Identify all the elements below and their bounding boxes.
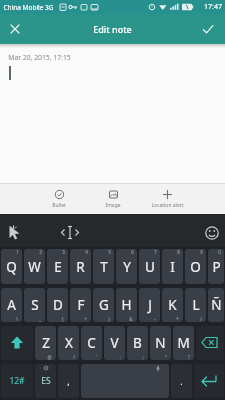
staticText: H — [121, 296, 132, 314]
staticText: @ — [47, 354, 52, 360]
button[interactable]: L — [185, 288, 206, 322]
button[interactable]: Image — [86, 184, 140, 214]
staticText: Bullet — [52, 202, 66, 209]
staticText: ; — [142, 354, 144, 360]
button[interactable]: B — [127, 326, 148, 360]
staticText: & — [129, 316, 133, 322]
staticText: . — [180, 375, 183, 387]
staticText: I — [170, 258, 175, 276]
staticText: China Mobile 3G — [3, 3, 54, 12]
staticText: U — [145, 258, 155, 276]
button[interactable]: . — [171, 364, 192, 398]
staticText: R — [76, 258, 85, 276]
button[interactable]: I — [162, 249, 183, 284]
button[interactable]: ES — [35, 364, 56, 398]
staticText: ES — [41, 375, 51, 387]
staticText: A — [7, 296, 16, 314]
staticText: O — [190, 258, 201, 276]
staticText: 3 — [62, 249, 65, 255]
staticText: N — [155, 334, 166, 352]
staticText: : — [119, 354, 121, 360]
staticText: Y — [123, 258, 131, 276]
button[interactable]: A — [1, 288, 22, 322]
staticText: , — [67, 375, 70, 387]
button[interactable]: E — [47, 249, 68, 284]
button[interactable]: J — [139, 288, 160, 322]
button[interactable]: D — [47, 288, 68, 322]
staticText: - — [154, 316, 156, 322]
staticText: 12# — [9, 375, 25, 387]
button[interactable]: H — [116, 288, 137, 322]
staticText: 0 — [218, 249, 221, 255]
button[interactable]: 12# — [1, 364, 33, 398]
button[interactable]: Z — [35, 326, 56, 360]
staticText: 8 — [177, 249, 180, 255]
button[interactable]: W — [24, 249, 45, 284]
staticText: ' — [96, 354, 98, 360]
staticText: K — [168, 296, 177, 314]
staticText: V — [110, 334, 119, 352]
button[interactable]: Ñ — [208, 288, 224, 322]
button[interactable]: , — [58, 364, 79, 398]
button[interactable]: F — [70, 288, 91, 322]
staticText: / — [73, 354, 75, 360]
staticText: 6 — [131, 249, 134, 255]
button[interactable]: N — [150, 326, 171, 360]
staticText: B — [133, 334, 142, 352]
staticText: Location alert — [151, 202, 184, 209]
staticText: Q — [6, 258, 17, 276]
staticText: 17:47 — [204, 2, 222, 12]
button[interactable]: V — [104, 326, 125, 360]
button[interactable]: Q — [1, 249, 22, 284]
staticText: Mar 20, 2015, 17:15 — [8, 53, 71, 62]
staticText: 9 — [200, 249, 203, 255]
staticText: * — [176, 316, 179, 322]
staticText: L — [192, 296, 200, 314]
staticText: T — [100, 258, 108, 276]
staticText: P — [212, 258, 221, 276]
staticText: S — [31, 296, 39, 314]
staticText: G — [99, 296, 109, 314]
button[interactable]: U — [139, 249, 160, 284]
button[interactable] — [196, 326, 224, 360]
staticText: ( — [62, 316, 64, 322]
staticText: E — [54, 258, 62, 276]
staticText: ? — [188, 354, 190, 360]
staticText: C — [87, 334, 96, 352]
button[interactable]: P — [208, 249, 224, 284]
staticText: \ — [16, 316, 18, 322]
staticText: J — [148, 296, 152, 314]
button[interactable]: C — [81, 326, 102, 360]
button[interactable] — [7, 21, 23, 37]
button[interactable]: G — [93, 288, 114, 322]
staticText: W — [28, 258, 41, 276]
button[interactable]: Y — [116, 249, 137, 284]
staticText: 5 — [108, 249, 111, 255]
button[interactable]: K — [162, 288, 183, 322]
staticText: _ — [39, 316, 41, 322]
staticText: 1 — [16, 249, 19, 255]
button[interactable]: O — [185, 249, 206, 284]
button[interactable]: Location alert — [140, 184, 194, 214]
button[interactable] — [81, 364, 169, 398]
staticText: 4 — [85, 249, 88, 255]
staticText: 2 — [39, 249, 42, 255]
button[interactable]: Bullet — [32, 184, 86, 214]
button[interactable]: S — [24, 288, 45, 322]
button[interactable] — [194, 364, 224, 398]
button[interactable]: R — [70, 249, 91, 284]
button[interactable] — [1, 326, 33, 360]
staticText: / — [200, 316, 202, 322]
staticText: Ñ — [211, 296, 222, 314]
staticText: ) — [108, 316, 110, 322]
staticText: " — [165, 354, 167, 360]
staticText: Edit note — [93, 23, 132, 35]
button[interactable]: X — [58, 326, 79, 360]
staticText: 7 — [154, 249, 157, 255]
staticText: Image — [105, 202, 121, 209]
staticText: F — [77, 296, 85, 314]
staticText: X — [65, 334, 73, 352]
button[interactable] — [200, 21, 216, 37]
button[interactable]: T — [93, 249, 114, 284]
button[interactable]: M — [173, 326, 194, 360]
